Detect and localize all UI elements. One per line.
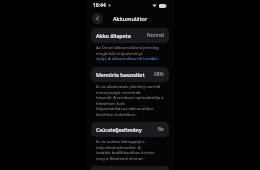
staticText: Az Önnel akkumulátora jelenleg megfelelő…	[96, 45, 164, 56]
button[interactable]: Memória használat	[91, 67, 169, 82]
staticText: Normál	[147, 32, 164, 39]
staticText: Ez az alkalmazás jelenleg normál mennyis…	[96, 84, 164, 95]
staticText: Akku állapota	[96, 32, 131, 39]
button[interactable]: Csúcsteljesítmény	[91, 122, 169, 137]
staticText: nyújt. A akkumulátorról további	[96, 56, 159, 62]
staticText: további beállításokhoz érintse meg a Rés…	[96, 150, 164, 161]
staticText: Be	[158, 126, 164, 133]
staticText: Csúcsteljesítmény	[96, 126, 142, 133]
staticText: 10:44	[93, 2, 106, 9]
staticText: 68%	[154, 71, 164, 78]
staticText: Memória használat	[96, 71, 145, 78]
staticText: Ez az eszköz támogatja a teljesítménykez…	[96, 139, 164, 150]
staticText: Akkumulátor	[113, 15, 148, 22]
button[interactable]: Akku állapota	[91, 28, 169, 43]
button[interactable]: Back	[92, 13, 103, 24]
staticText: folyamatokat az akkumulátor kímélése érd…	[96, 106, 164, 117]
staticText: használ. A rendszer optimalizálja a hátt…	[96, 95, 164, 106]
